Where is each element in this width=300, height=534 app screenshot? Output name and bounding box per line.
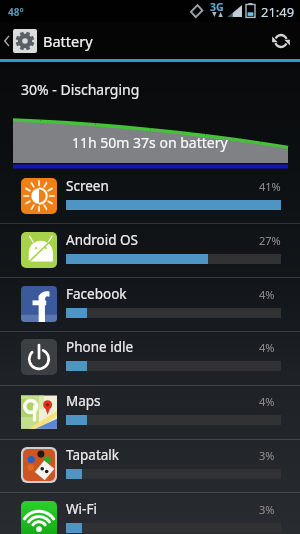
other: Navigate up: [2, 33, 12, 49]
staticText: Phone idle: [66, 338, 134, 356]
staticText: 11h 50m 37s on battery: [72, 133, 228, 152]
button[interactable]: Phone idle: [0, 332, 300, 385]
staticText: Maps: [66, 392, 101, 410]
button[interactable]: Maps: [0, 386, 300, 439]
button[interactable]: Facebook: [0, 279, 300, 332]
staticText: 3G: [210, 0, 224, 14]
button[interactable]: Tapatalk: [0, 440, 300, 493]
staticText: Tapatalk: [66, 446, 120, 464]
staticText: 4%: [259, 394, 275, 409]
staticText: 21:49: [261, 3, 295, 21]
staticText: 3%: [259, 502, 275, 517]
staticText: Android OS: [66, 231, 138, 249]
staticText: Facebook: [66, 285, 127, 303]
staticText: Battery: [43, 31, 93, 51]
staticText: 48°: [8, 5, 24, 19]
staticText: 4%: [259, 287, 275, 302]
staticText: Wi-Fi: [66, 500, 97, 518]
button[interactable]: Navigate up: [0, 22, 93, 59]
staticText: 41%: [259, 179, 281, 194]
button[interactable]: Refresh: [262, 22, 299, 59]
button[interactable]: Screen: [0, 171, 300, 224]
staticText: 3%: [259, 448, 275, 463]
button[interactable]: Wi-Fi: [0, 494, 300, 534]
staticText: 27%: [259, 233, 281, 248]
button[interactable]: Android OS: [0, 225, 300, 278]
staticText: 30% - Discharging: [21, 80, 140, 99]
staticText: 4%: [259, 340, 275, 355]
staticText: Screen: [66, 177, 109, 195]
